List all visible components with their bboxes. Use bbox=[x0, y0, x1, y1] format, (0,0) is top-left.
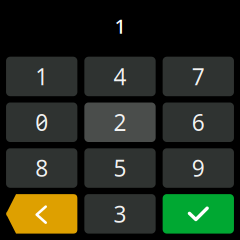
staticText: 5 bbox=[113, 153, 126, 183]
button[interactable]: 1 bbox=[6, 57, 77, 96]
staticText: 1 bbox=[114, 13, 125, 39]
button[interactable]: 9 bbox=[163, 148, 234, 188]
staticText: 9 bbox=[192, 153, 205, 183]
staticText: 8 bbox=[35, 153, 48, 183]
staticText: 4 bbox=[113, 61, 126, 91]
button[interactable]: 5 bbox=[84, 148, 156, 188]
staticText: 2 bbox=[113, 107, 126, 137]
staticText: 1 bbox=[35, 61, 48, 91]
button[interactable]: 3 bbox=[84, 194, 156, 234]
button[interactable]: 7 bbox=[163, 57, 234, 96]
button[interactable]: 6 bbox=[163, 102, 234, 142]
button[interactable]: 2 bbox=[84, 102, 156, 142]
button[interactable]: 0 bbox=[6, 102, 77, 142]
button[interactable]: 8 bbox=[6, 148, 77, 188]
staticText: 7 bbox=[192, 61, 205, 91]
button[interactable]: Delete bbox=[6, 194, 77, 234]
staticText: 0 bbox=[35, 107, 48, 137]
button[interactable]: Confirm bbox=[163, 194, 234, 234]
staticText: 3 bbox=[113, 199, 126, 229]
staticText: 6 bbox=[192, 107, 205, 137]
button[interactable]: 4 bbox=[84, 57, 156, 96]
